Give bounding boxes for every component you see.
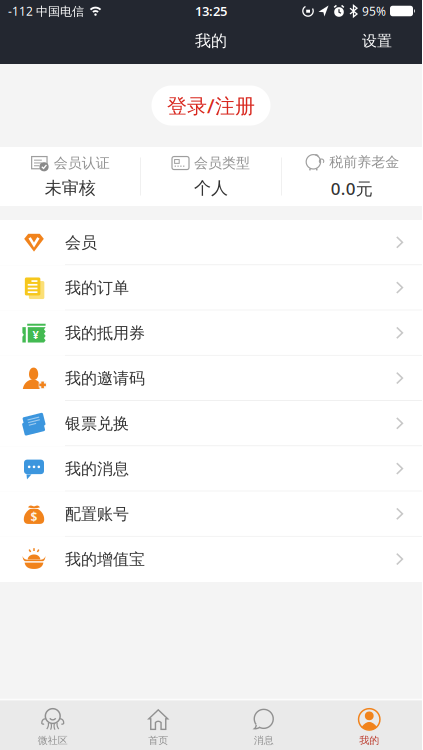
staticText: 我的订单 [65, 278, 129, 298]
staticText: -112 中国电信 [8, 3, 84, 19]
staticText: 个人 [194, 178, 228, 199]
staticText: 我的消息 [65, 459, 129, 479]
staticText: 我的 [359, 734, 379, 747]
button[interactable]: ¥ [0, 310, 422, 356]
staticText: 未审核 [45, 178, 96, 199]
staticText: 我的邀请码 [65, 368, 145, 388]
staticText: 微社区 [38, 734, 68, 747]
staticText: 配置账号 [65, 504, 129, 524]
button[interactable]: 登录/注册 [151, 85, 270, 125]
button[interactable]: 首页 [105, 707, 211, 747]
staticText: 会员 [65, 233, 97, 252]
staticText: 银票兑换 [65, 414, 129, 433]
staticText: ¥ [33, 327, 39, 342]
button[interactable]: 银票兑换 [0, 401, 422, 446]
staticText: 13:25 [195, 2, 227, 20]
button[interactable]: $ [0, 491, 422, 537]
button[interactable]: 我的订单 [0, 265, 422, 310]
button[interactable]: 我的消息 [0, 446, 422, 491]
staticText: 首页 [148, 734, 168, 747]
button[interactable]: 会员 [0, 220, 422, 265]
staticText: 设置 [362, 32, 392, 50]
staticText: 0.0元 [331, 177, 373, 200]
button[interactable]: 设置 [362, 32, 422, 50]
staticText: 会员类型 [194, 154, 250, 172]
staticText: 我的增值宝 [65, 549, 145, 569]
staticText: 税前养老金 [329, 154, 399, 171]
staticText: 我的 [195, 31, 227, 51]
staticText: $ [30, 509, 37, 525]
staticText: 我的抵用券 [65, 323, 145, 343]
button[interactable]: 我的 [316, 707, 422, 747]
staticText: 会员认证 [54, 154, 110, 172]
button[interactable]: 消息 [211, 707, 316, 747]
staticText: 95% [362, 3, 386, 19]
button[interactable]: 我的邀请码 [0, 356, 422, 401]
button[interactable]: 微社区 [0, 707, 105, 747]
staticText: 登录/注册 [167, 92, 255, 119]
button[interactable]: 我的增值宝 [0, 537, 422, 582]
staticText: 消息 [254, 734, 274, 747]
